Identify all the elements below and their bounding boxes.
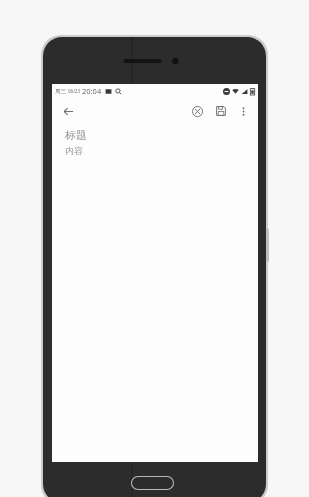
staticText: 20:04 (82, 86, 102, 96)
staticText: 标题 (65, 128, 87, 142)
button[interactable]: Clear (186, 100, 208, 122)
button[interactable]: Save (210, 100, 232, 122)
staticText: 06/23 (68, 88, 80, 94)
button[interactable]: More options (233, 101, 253, 121)
button[interactable]: Back (58, 101, 78, 121)
staticText: 周三 (55, 88, 66, 95)
staticText: 内容 (65, 145, 83, 156)
